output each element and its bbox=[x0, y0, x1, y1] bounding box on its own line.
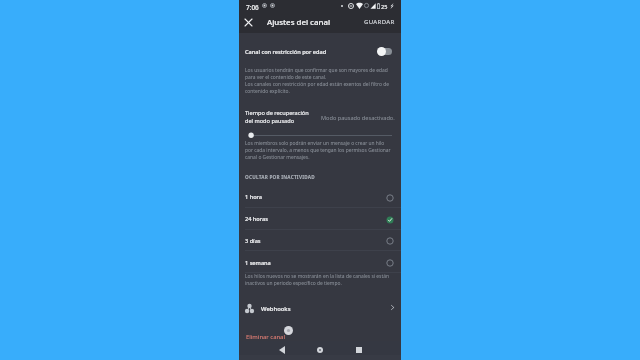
button[interactable]: Recientes bbox=[351, 342, 367, 358]
staticText: GUARDAR bbox=[364, 18, 395, 26]
staticText: 1 semana bbox=[245, 259, 271, 267]
button[interactable] bbox=[239, 208, 401, 230]
button[interactable] bbox=[239, 296, 401, 320]
staticText: Tiempo de recuperación del modo pausado bbox=[245, 109, 315, 125]
staticText: Modo pausado desactivado. bbox=[321, 114, 395, 122]
staticText: Los usuarios tendrán que confirmar que s… bbox=[245, 67, 397, 95]
staticText: OCULTAR POR INACTIVIDAD bbox=[245, 174, 315, 180]
button[interactable]: GUARDAR bbox=[363, 14, 396, 29]
staticText: 1 hora bbox=[245, 193, 263, 201]
button[interactable]: Inicio bbox=[312, 342, 328, 358]
button[interactable]: Atrás bbox=[274, 342, 290, 358]
button[interactable] bbox=[239, 251, 401, 273]
staticText: Ajustes del canal bbox=[267, 17, 331, 28]
button[interactable]: Restricción por edad bbox=[377, 47, 391, 56]
button[interactable] bbox=[239, 38, 401, 58]
staticText: 7:06 bbox=[246, 3, 259, 12]
staticText: Los miembros solo podrán enviar un mensa… bbox=[245, 140, 397, 161]
button[interactable]: Cerrar bbox=[240, 14, 256, 30]
staticText: Eliminar canal bbox=[246, 333, 286, 341]
staticText: 3 días bbox=[245, 237, 261, 245]
staticText: 25 bbox=[381, 3, 388, 11]
staticText: Canal con restricción por edad bbox=[245, 48, 327, 56]
button[interactable] bbox=[239, 328, 401, 344]
button[interactable] bbox=[239, 230, 401, 252]
staticText: Webhooks bbox=[261, 305, 291, 313]
staticText: 24 horas bbox=[245, 215, 268, 223]
staticText: Los hilos nuevos no se mostrarán en la l… bbox=[245, 273, 397, 287]
button[interactable]: Intervalo bbox=[246, 130, 256, 140]
button[interactable] bbox=[239, 186, 401, 208]
